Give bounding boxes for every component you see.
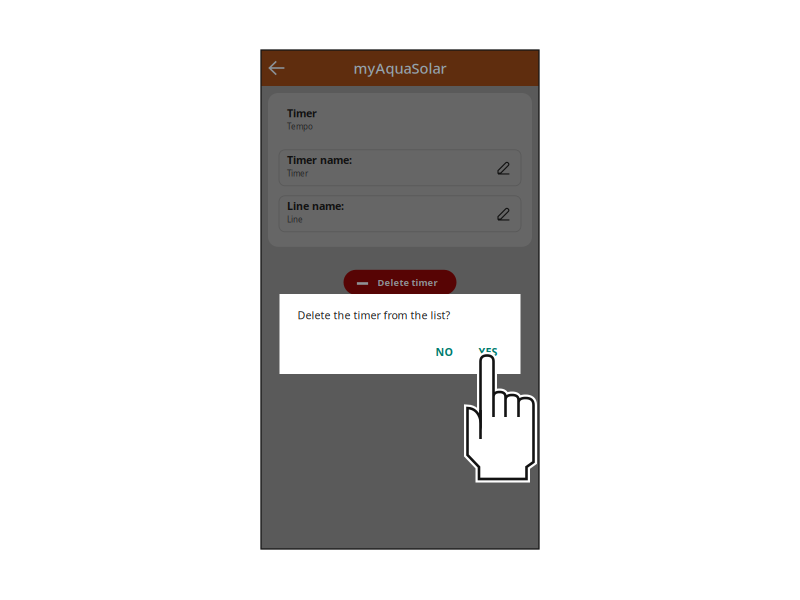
button[interactable]: NO: [422, 340, 465, 364]
staticText: YES: [478, 345, 497, 359]
button[interactable]: Edit line name: [279, 196, 521, 232]
staticText: Timer: [287, 106, 317, 120]
staticText: Line name:: [287, 199, 344, 213]
button[interactable]: YES: [465, 340, 510, 364]
staticText: myAquaSolar: [353, 58, 446, 78]
button[interactable]: Edit timer name: [279, 150, 521, 186]
button[interactable]: Delete timer: [343, 270, 456, 295]
staticText: Line: [287, 214, 303, 225]
staticText: Delete the timer from the list?: [297, 308, 450, 322]
staticText: Timer: [287, 168, 308, 179]
staticText: NO: [435, 345, 452, 359]
staticText: Timer name:: [287, 153, 352, 167]
button[interactable]: Back: [261, 50, 293, 86]
staticText: Tempo: [287, 121, 313, 132]
staticText: Delete timer: [377, 276, 437, 288]
